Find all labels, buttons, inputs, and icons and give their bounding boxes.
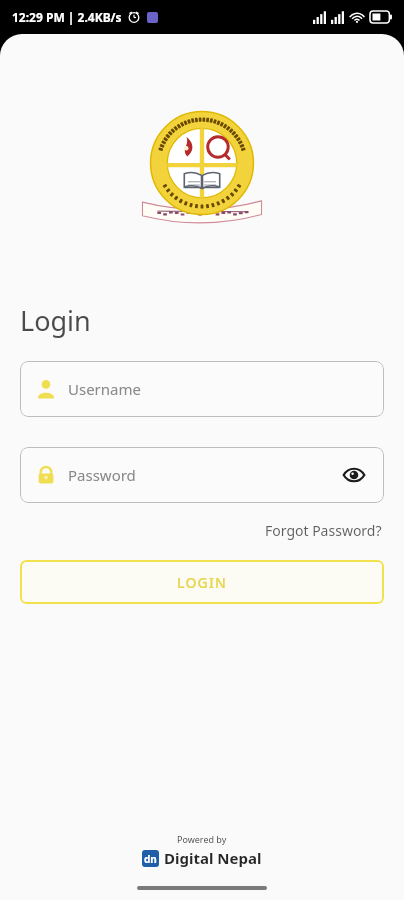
staticText: LOGIN — [177, 573, 228, 592]
staticText: dn — [144, 852, 157, 866]
button[interactable]: Username — [20, 361, 384, 417]
button[interactable]: Forgot Password? — [263, 517, 384, 544]
staticText: Login — [20, 302, 91, 339]
button[interactable]: LOGIN — [20, 560, 384, 604]
staticText: 12:29 PM | 2.4KB/s — [12, 9, 122, 25]
button[interactable]: Show password — [334, 455, 374, 495]
staticText: Forgot Password? — [265, 521, 382, 540]
staticText: Password — [68, 465, 334, 485]
staticText: Powered by — [177, 833, 227, 845]
staticText: Digital Nepal — [164, 848, 262, 868]
button[interactable]: Password — [20, 447, 384, 503]
staticText: Username — [68, 379, 141, 399]
